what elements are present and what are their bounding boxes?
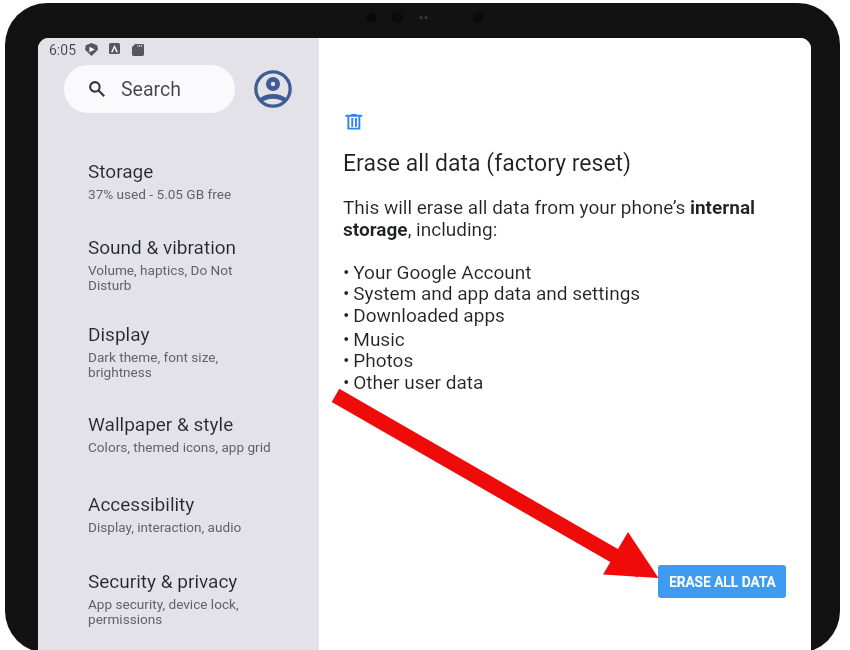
staticText: 37% used - 5.05 GB free <box>88 186 232 202</box>
button[interactable]: Search <box>64 65 235 113</box>
staticText: This will erase all data from your phone… <box>343 196 773 241</box>
staticText: Sound & vibration <box>88 236 237 258</box>
staticText: Display <box>88 323 150 345</box>
staticText: Erase all data (factory reset) <box>343 150 632 177</box>
staticText: App security, device lock, permissions <box>88 596 239 627</box>
staticText: ERASE ALL DATA <box>669 574 776 590</box>
staticText: • Music • Photos • Other user data <box>343 328 484 394</box>
button[interactable]: Security & privacy <box>38 558 319 634</box>
staticText: 6:05 <box>49 42 76 58</box>
staticText: Dark theme, font size, brightness <box>88 349 219 380</box>
button[interactable]: Delete <box>345 114 363 132</box>
staticText: Security & privacy <box>88 570 238 592</box>
staticText: Wallpaper & style <box>88 413 234 435</box>
staticText: Volume, haptics, Do Not Disturb <box>88 262 233 293</box>
button[interactable]: Account <box>253 69 293 109</box>
button[interactable]: Storage <box>38 148 319 224</box>
button[interactable]: ERASE ALL DATA <box>658 565 786 598</box>
staticText: • Your Google Account • System and app d… <box>343 261 641 327</box>
staticText: Colors, themed icons, app grid <box>88 439 271 455</box>
staticText: Search <box>121 78 181 101</box>
button[interactable]: Accessibility <box>38 481 319 558</box>
staticText: Storage <box>88 160 154 182</box>
staticText: Display, interaction, audio <box>88 519 242 535</box>
staticText: Accessibility <box>88 493 195 515</box>
button[interactable]: Wallpaper & style <box>38 401 319 481</box>
button[interactable]: Sound & vibration <box>38 224 319 311</box>
button[interactable]: Display <box>38 311 319 401</box>
